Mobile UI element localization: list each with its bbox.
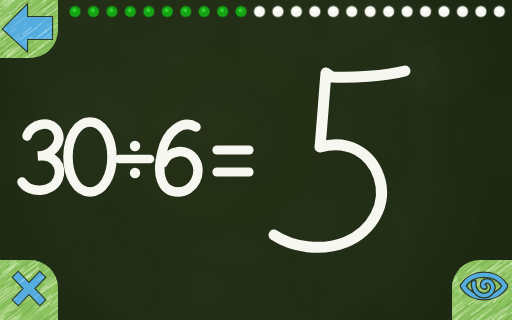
button[interactable]: Back	[0, 0, 58, 58]
button[interactable]: Close	[0, 260, 58, 320]
button[interactable]: Show answer	[452, 260, 512, 320]
